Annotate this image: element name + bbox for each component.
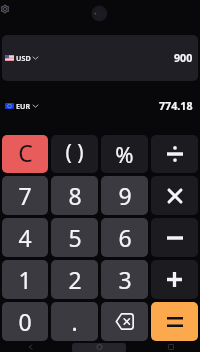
button[interactable]: Add bbox=[151, 260, 198, 299]
button[interactable]: 5 bbox=[51, 218, 98, 257]
button[interactable]: ( ) bbox=[51, 135, 98, 173]
button[interactable]: Backspace bbox=[101, 302, 148, 341]
staticText: 2 bbox=[68, 264, 82, 295]
button[interactable]: Subtract bbox=[151, 218, 198, 257]
button[interactable]: 3 bbox=[101, 260, 148, 299]
staticText: 1 bbox=[18, 264, 32, 295]
button[interactable]: 4 bbox=[2, 218, 48, 257]
button[interactable]: . bbox=[51, 302, 98, 341]
staticText: 5 bbox=[68, 222, 82, 253]
staticText: 8 bbox=[68, 180, 82, 211]
button[interactable]: 7 bbox=[2, 176, 48, 215]
staticText: . bbox=[71, 306, 78, 337]
button[interactable]: Equals bbox=[151, 302, 198, 341]
staticText: % bbox=[115, 139, 134, 169]
button[interactable]: Divide bbox=[151, 135, 198, 173]
staticText: ( ) bbox=[65, 138, 84, 167]
staticText: 4 bbox=[18, 222, 32, 253]
staticText: C bbox=[18, 137, 33, 168]
staticText: USD bbox=[16, 53, 31, 63]
button[interactable]: 8 bbox=[51, 176, 98, 215]
button[interactable]: EUR bbox=[2, 83, 198, 129]
button[interactable]: 1 bbox=[2, 260, 48, 299]
staticText: EUR bbox=[16, 101, 31, 111]
button[interactable]: 2 bbox=[51, 260, 98, 299]
button[interactable]: Multiply bbox=[151, 176, 198, 215]
staticText: 3 bbox=[118, 264, 132, 295]
button[interactable]: C bbox=[2, 135, 48, 173]
button[interactable]: Settings bbox=[0, 4, 10, 14]
button[interactable]: USD bbox=[2, 35, 198, 81]
staticText: 6 bbox=[118, 222, 132, 253]
button[interactable]: 9 bbox=[101, 176, 148, 215]
staticText: 774.18 bbox=[159, 99, 193, 114]
staticText: 9 bbox=[118, 180, 132, 211]
button[interactable]: 6 bbox=[101, 218, 148, 257]
staticText: 7 bbox=[18, 180, 32, 211]
staticText: 0 bbox=[18, 306, 32, 337]
button[interactable]: 0 bbox=[2, 302, 48, 341]
staticText: 900 bbox=[174, 51, 193, 66]
button[interactable]: % bbox=[101, 135, 148, 173]
